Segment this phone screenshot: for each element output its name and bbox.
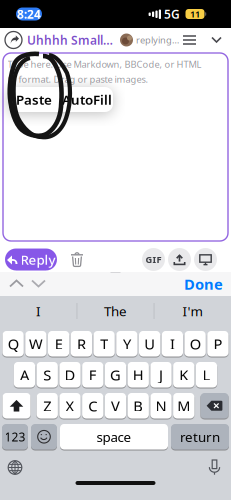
staticText: Y (123, 334, 131, 353)
button[interactable]: I'm (154, 302, 231, 320)
staticText: Paste (16, 91, 52, 108)
staticText: 8:24 (17, 6, 41, 22)
staticText: C (88, 396, 97, 415)
button[interactable]: Reply (5, 248, 57, 270)
button[interactable]: X (59, 393, 81, 418)
staticText: J (159, 365, 163, 384)
button[interactable]: M (173, 393, 194, 418)
button[interactable]: I (162, 331, 183, 356)
staticText: R (77, 334, 86, 353)
button[interactable]: Z (37, 393, 58, 418)
staticText: GIF (145, 253, 161, 266)
button[interactable]: B (128, 393, 149, 418)
staticText: B (133, 396, 143, 415)
button[interactable]: K (173, 362, 194, 387)
staticText: W (29, 334, 43, 353)
staticText: K (179, 365, 188, 384)
staticText: I (36, 302, 41, 320)
staticText: Uhhhh Small Qu… (27, 32, 115, 48)
button[interactable]: Done (184, 274, 231, 294)
button[interactable]: Uhhhh Small Qu… (22, 33, 115, 47)
button[interactable]: R (71, 331, 92, 356)
button[interactable]: G (105, 362, 126, 387)
staticText: space (96, 428, 131, 446)
staticText: M (177, 396, 190, 415)
button[interactable]: Collapse composer (196, 37, 231, 42)
button[interactable]: J (150, 362, 172, 387)
button[interactable]: E (48, 331, 69, 356)
button[interactable]: I (0, 302, 76, 320)
staticText: Done (184, 274, 223, 294)
button[interactable]: W (25, 331, 46, 356)
staticText: 5G (164, 6, 180, 22)
button[interactable]: Y (116, 331, 137, 356)
button[interactable]: D (59, 362, 81, 387)
button[interactable]: space (60, 424, 168, 449)
staticText: L (202, 365, 210, 384)
button[interactable]: Delete draft (57, 252, 83, 267)
staticText: F (89, 365, 97, 384)
button[interactable]: Paste (8, 87, 113, 112)
staticText: replying… (136, 34, 179, 46)
staticText: to format. Drag or paste images. (7, 73, 148, 85)
button[interactable]: Emoji (28, 424, 57, 449)
staticText: 11 (190, 8, 200, 20)
button[interactable]: 123 (2, 424, 28, 449)
button[interactable]: Menu (183, 35, 196, 45)
staticText: 123 (4, 429, 25, 445)
staticText: I'm (183, 302, 203, 320)
button[interactable]: N (150, 393, 172, 418)
button[interactable]: Shift (2, 393, 30, 418)
staticText: Q (8, 334, 19, 353)
button[interactable]: L (196, 362, 217, 387)
staticText: AutoFill (62, 91, 112, 108)
staticText: H (133, 365, 144, 384)
staticText: P (213, 334, 222, 353)
button[interactable]: P (207, 331, 228, 356)
button[interactable]: Upload (165, 248, 191, 271)
staticText: S (43, 365, 51, 384)
button[interactable]: Toggle preview (191, 248, 231, 271)
button[interactable]: S (37, 362, 58, 387)
button[interactable]: Next keyboard (0, 460, 22, 474)
button[interactable]: F (82, 362, 103, 387)
button[interactable]: U (139, 331, 160, 356)
button[interactable]: V (105, 393, 126, 418)
button[interactable]: Share topic (0, 31, 22, 48)
button[interactable]: Previous field (0, 280, 23, 287)
button[interactable]: O (184, 331, 206, 356)
staticText: V (111, 396, 120, 415)
staticText: Type here. Use Markdown, BBCode, or HTML (7, 58, 201, 70)
staticText: G (110, 365, 121, 384)
staticText: N (155, 396, 166, 415)
button[interactable]: Insert GIF (142, 248, 165, 271)
staticText: O (190, 334, 201, 353)
button[interactable]: C (82, 393, 103, 418)
button[interactable]: Next field (23, 280, 45, 287)
button[interactable]: Dictate (208, 459, 231, 475)
staticText: T (100, 334, 108, 353)
staticText: E (55, 334, 63, 353)
button[interactable]: Q (2, 331, 24, 356)
button[interactable]: Delete (200, 393, 228, 418)
button[interactable]: T (93, 331, 115, 356)
staticText: X (65, 396, 74, 415)
button[interactable]: The (77, 302, 154, 320)
staticText: I (170, 334, 175, 353)
staticText: Z (43, 396, 51, 415)
staticText: return (180, 428, 220, 446)
button[interactable]: H (128, 362, 149, 387)
staticText: D (64, 365, 75, 384)
staticText: U (144, 334, 155, 353)
staticText: The (104, 302, 127, 320)
button[interactable]: return (171, 424, 229, 449)
staticText: Reply (20, 251, 55, 268)
staticText: A (20, 365, 29, 384)
button[interactable]: A (14, 362, 35, 387)
